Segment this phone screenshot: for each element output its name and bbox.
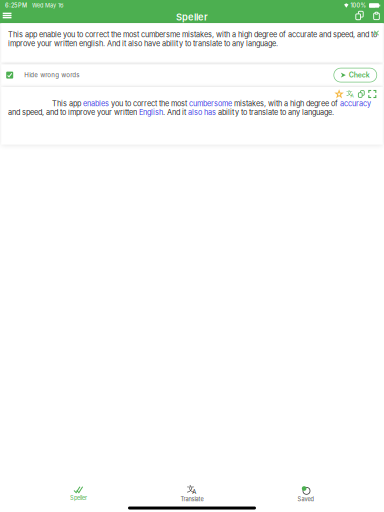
staticText: mistakes, with a high degree of xyxy=(232,99,340,108)
staticText: Speller xyxy=(176,11,208,23)
staticText: also has xyxy=(188,108,216,117)
button[interactable]: Paste xyxy=(370,11,383,20)
staticText: ability to translate to any language. xyxy=(216,108,334,117)
staticText: 6:25 PM xyxy=(5,2,27,9)
staticText: Saved xyxy=(297,496,313,503)
button[interactable]: Favourite xyxy=(336,90,343,97)
staticText: 100% xyxy=(350,2,366,9)
button[interactable]: Menu xyxy=(0,11,17,20)
staticText: English xyxy=(139,108,163,117)
staticText: Speller xyxy=(70,494,87,501)
button[interactable]: Translate xyxy=(347,90,354,98)
staticText: Check xyxy=(349,71,370,79)
staticText: accuracy xyxy=(340,99,371,108)
button[interactable]: 文 xyxy=(157,485,227,502)
staticText: Translate xyxy=(180,496,203,503)
staticText: Hide wrong words xyxy=(24,71,79,79)
staticText: . And it xyxy=(163,108,188,117)
button[interactable]: Saved xyxy=(270,485,340,502)
staticText: 文 xyxy=(346,89,352,97)
staticText: This app enable you to correct the most … xyxy=(8,30,377,48)
button[interactable]: Expand xyxy=(369,90,376,97)
staticText: Wed May 16 xyxy=(32,2,63,9)
staticText: 文 xyxy=(187,484,195,494)
staticText: This app xyxy=(52,99,83,108)
button[interactable]: Speller xyxy=(43,485,113,502)
staticText: you to correct the most xyxy=(109,99,189,108)
staticText: cumbersome xyxy=(189,99,232,108)
staticText: enables xyxy=(83,99,109,108)
button[interactable]: Copy xyxy=(353,11,366,20)
button[interactable]: Hide wrong words xyxy=(6,65,79,85)
button[interactable]: Copy xyxy=(358,90,365,97)
staticText: A xyxy=(192,487,196,496)
staticText: and speed, and to improve your written xyxy=(8,108,139,117)
button[interactable]: Check xyxy=(334,68,377,82)
staticText: A xyxy=(351,92,354,99)
